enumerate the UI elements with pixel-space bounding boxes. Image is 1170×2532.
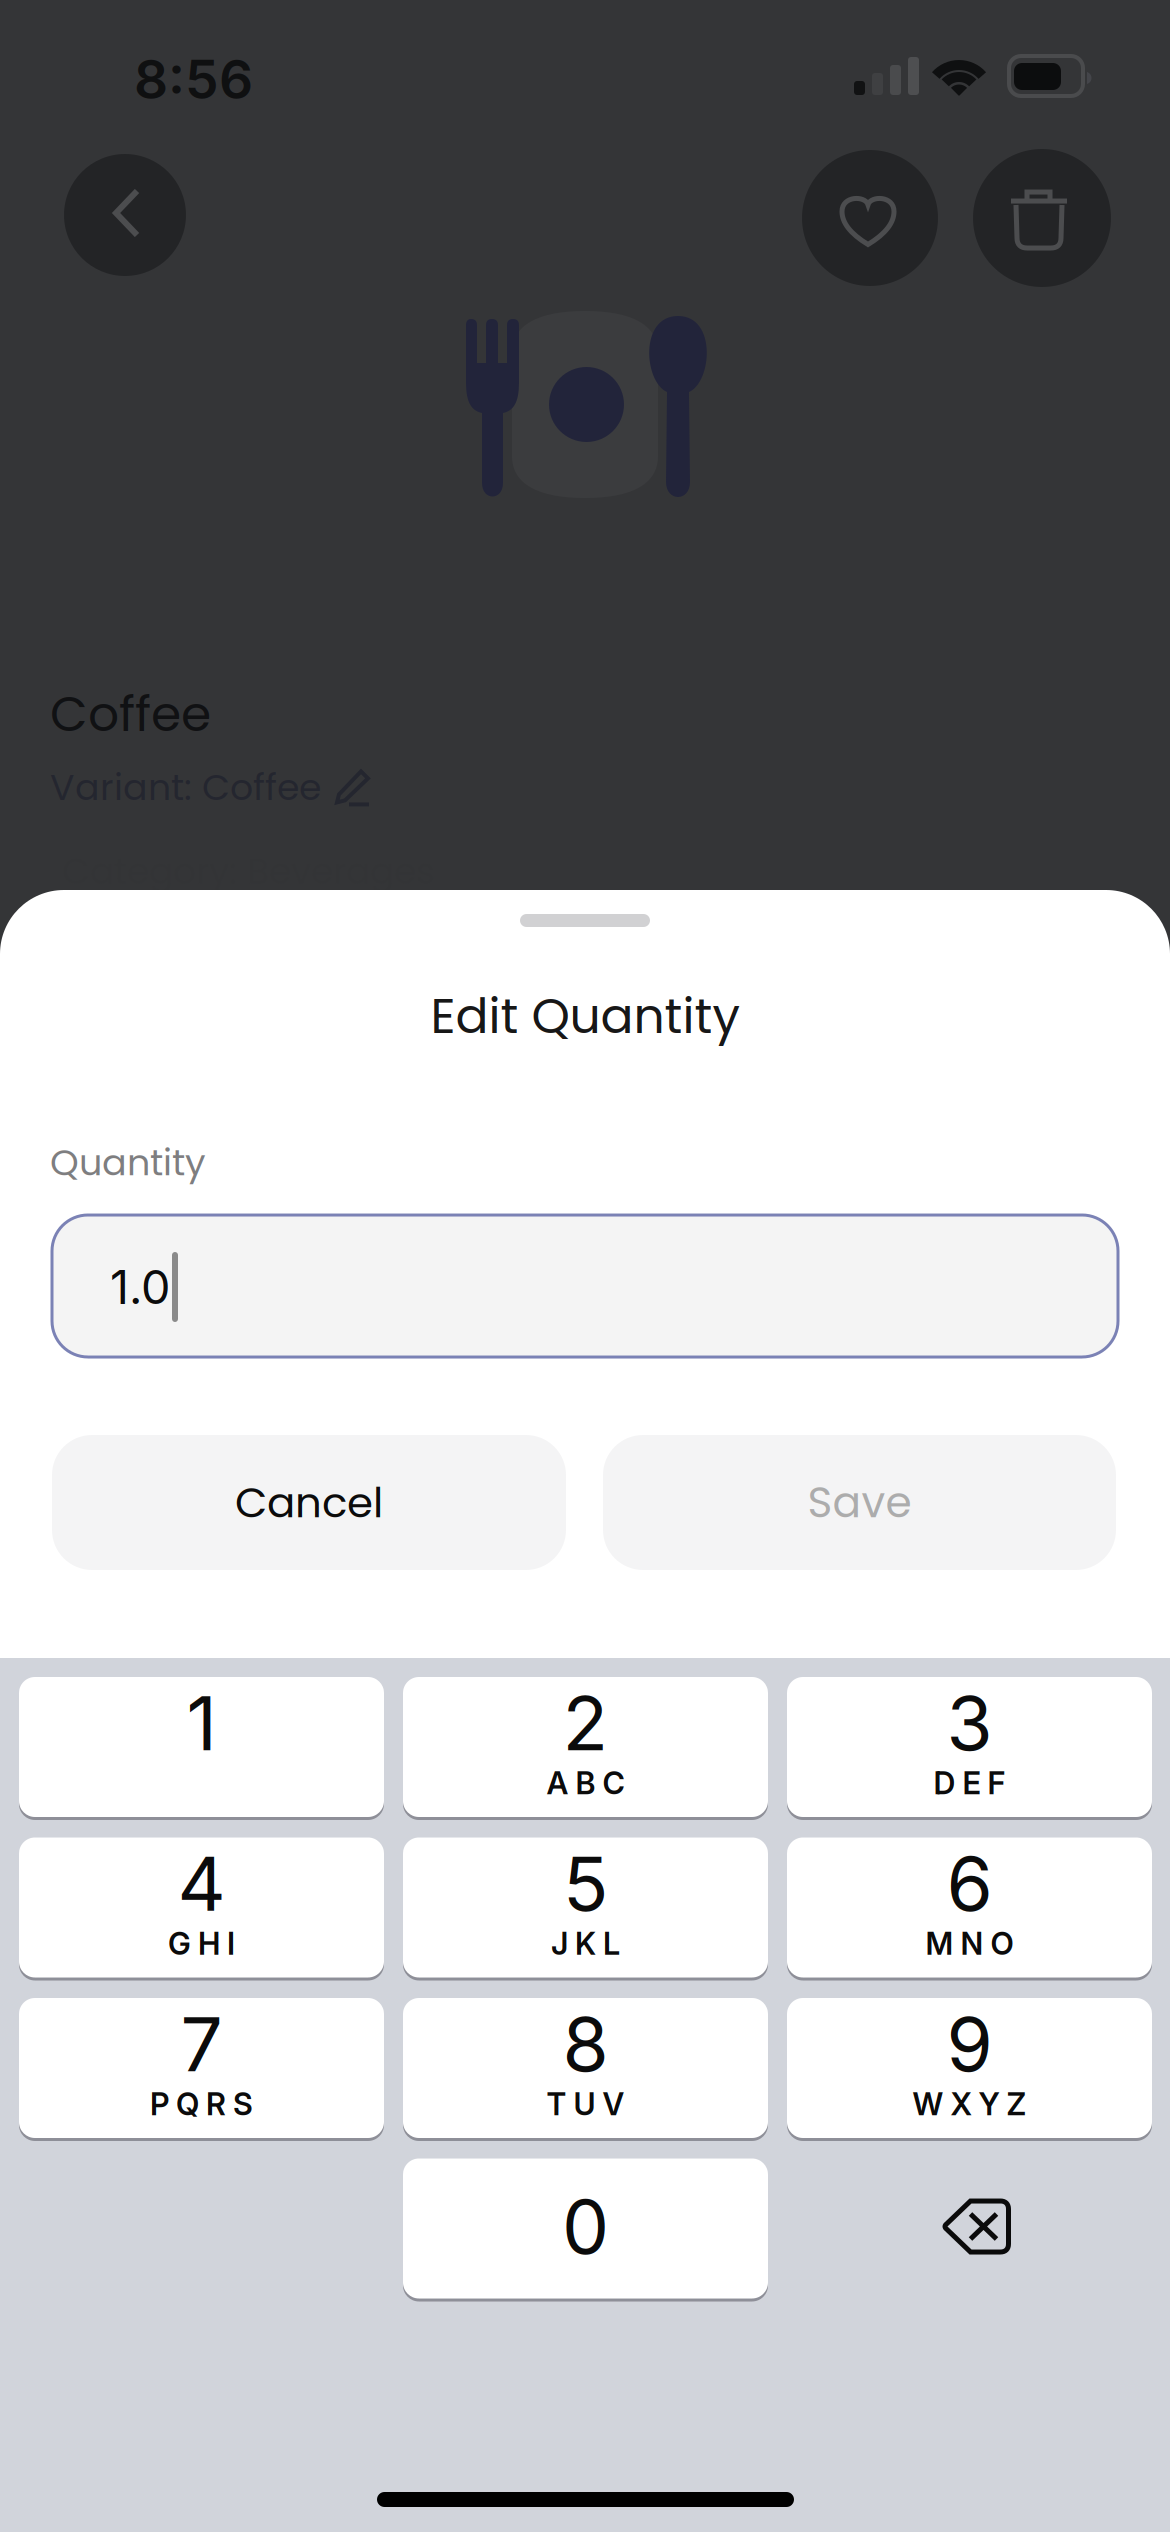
staticText: T U V xyxy=(546,2085,624,2122)
staticText: 1 xyxy=(186,1678,216,1768)
button[interactable]: 2 xyxy=(403,1677,768,1820)
staticText: 9 xyxy=(946,1999,992,2089)
staticText: P Q R S xyxy=(150,2085,253,2122)
button[interactable]: 0 xyxy=(403,2158,768,2301)
button[interactable]: Delete xyxy=(787,2158,1152,2301)
button[interactable]: 4 xyxy=(19,1837,384,1980)
staticText: Save xyxy=(807,1473,911,1532)
staticText: Edit Quantity xyxy=(430,982,739,1050)
staticText: Quantity xyxy=(50,1137,206,1188)
staticText: Cancel xyxy=(235,1473,383,1532)
staticText: 3 xyxy=(946,1678,992,1768)
button[interactable]: 6 xyxy=(787,1837,1152,1980)
staticText: J K L xyxy=(551,1925,620,1962)
staticText: W X Y Z xyxy=(912,2085,1026,2122)
staticText: 8:56 xyxy=(134,47,253,111)
staticText: 7 xyxy=(180,1999,222,2089)
button[interactable]: 3 xyxy=(787,1677,1152,1820)
staticText: D E F xyxy=(933,1764,1005,1801)
button[interactable]: 7 xyxy=(19,1998,384,2141)
button[interactable]: Save xyxy=(603,1435,1116,1570)
button[interactable]: Favorite xyxy=(802,150,938,286)
staticText: 6 xyxy=(946,1838,992,1929)
staticText: Variant: Coffee xyxy=(50,762,321,813)
staticText: M N O xyxy=(925,1925,1013,1962)
button[interactable]: Cancel xyxy=(52,1435,566,1570)
staticText: 8 xyxy=(562,1999,608,2089)
staticText: 5 xyxy=(563,1838,608,1929)
button[interactable]: 5 xyxy=(403,1837,768,1980)
staticText: Category: Beverages xyxy=(62,846,435,896)
staticText: G H I xyxy=(168,1925,235,1962)
staticText: Coffee xyxy=(50,680,211,748)
button[interactable]: Delete xyxy=(973,149,1111,287)
staticText: 2 xyxy=(562,1678,608,1768)
button[interactable]: 1 xyxy=(19,1677,384,1820)
button[interactable]: 9 xyxy=(787,1998,1152,2141)
staticText: 1.0 xyxy=(110,1259,170,1315)
staticText: A B C xyxy=(546,1764,624,1801)
button[interactable]: Back xyxy=(64,154,186,276)
staticText: 4 xyxy=(177,1838,225,1929)
staticText: 0 xyxy=(562,2181,609,2272)
button[interactable]: 8 xyxy=(403,1998,768,2141)
